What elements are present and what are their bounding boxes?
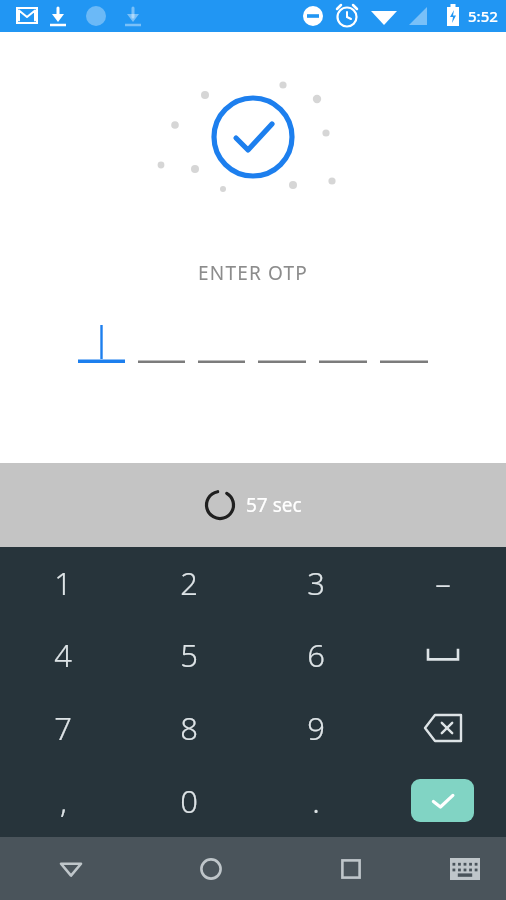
button[interactable] (78, 317, 125, 363)
staticText: 6 (307, 634, 325, 676)
staticText: 4 (54, 634, 72, 676)
staticText: – (435, 562, 451, 604)
button[interactable]: Back (42, 840, 100, 898)
button[interactable] (198, 317, 245, 363)
button[interactable]: 9 (252, 691, 379, 764)
button[interactable]: Enter (379, 764, 506, 837)
button[interactable]: Recent apps (322, 840, 380, 898)
button[interactable]: 6 (252, 619, 379, 691)
button[interactable] (380, 317, 428, 363)
staticText: 5 (180, 634, 198, 676)
button[interactable]: 3 (252, 547, 379, 619)
button[interactable]: Switch keyboard (439, 843, 491, 895)
button[interactable]: 7 (0, 691, 126, 764)
staticText: 1 (54, 562, 72, 604)
button[interactable]: Home (182, 840, 240, 898)
button[interactable]: – (379, 547, 506, 619)
button[interactable]: 5 (126, 619, 252, 691)
button[interactable]: 0 (126, 764, 252, 837)
button[interactable]: 8 (126, 691, 252, 764)
staticText: 5:52 (468, 6, 498, 26)
button[interactable] (319, 317, 367, 363)
staticText: 3 (307, 562, 325, 604)
staticText: , (60, 780, 67, 822)
staticText: 0 (180, 780, 198, 822)
button[interactable]: , (0, 764, 126, 837)
button[interactable]: Backspace (379, 691, 506, 764)
staticText: . (312, 780, 320, 822)
staticText: 7 (54, 707, 72, 749)
staticText: 2 (180, 562, 198, 604)
button[interactable] (138, 317, 185, 363)
button[interactable]: 1 (0, 547, 126, 619)
button[interactable]: 4 (0, 619, 126, 691)
staticText: 9 (307, 707, 325, 749)
staticText: 57 sec (246, 492, 302, 518)
staticText: 8 (180, 707, 198, 749)
staticText: ENTER OTP (198, 260, 309, 286)
button[interactable] (258, 317, 306, 363)
button[interactable]: 2 (126, 547, 252, 619)
button[interactable]: Space (379, 619, 506, 691)
button[interactable]: . (252, 764, 379, 837)
